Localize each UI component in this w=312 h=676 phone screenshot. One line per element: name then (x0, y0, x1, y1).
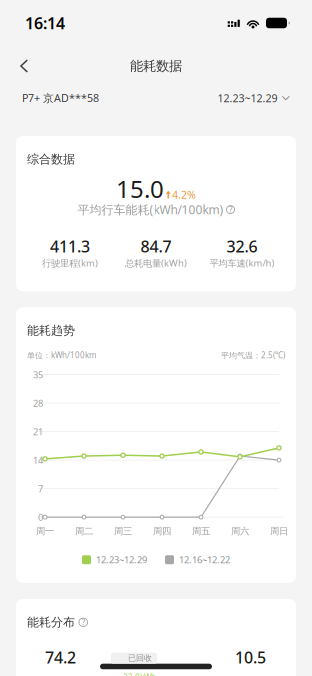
staticText: 411.3 (50, 235, 90, 257)
staticText: 32.6 (226, 235, 257, 257)
staticText: 28 (33, 397, 43, 409)
staticText: 能耗分布 (27, 615, 75, 630)
staticText: 周一 (36, 525, 54, 537)
staticText: 综合数据 (27, 152, 75, 167)
staticText: 0 (38, 511, 43, 523)
staticText: 12.16~12.22 (179, 554, 230, 566)
staticText: 周四 (153, 525, 171, 537)
staticText: 能耗趋势 (27, 323, 75, 338)
staticText: 12.23~12.29 (96, 554, 147, 566)
staticText: 周五 (192, 525, 210, 537)
staticText: 10.5 (235, 647, 266, 668)
staticText: 单位：kWh/100km (27, 350, 96, 360)
staticText: 平均气温：2.5(°C) (221, 350, 285, 360)
staticText: 15.0 (116, 173, 164, 205)
staticText: 周六 (231, 525, 249, 537)
staticText: ? (229, 204, 232, 215)
staticText: 已回收 (128, 653, 152, 663)
staticText: 84.7 (140, 235, 171, 257)
staticText: 14 (33, 454, 43, 466)
staticText: 总耗电量(kWh) (125, 257, 187, 269)
staticText: 16:14 (25, 12, 65, 34)
button[interactable]: 12.23~12.29 (218, 91, 290, 105)
staticText: 12.23~12.29 (218, 91, 278, 105)
staticText: 平均车速(km/h) (209, 257, 274, 269)
staticText: 能耗数据 (130, 58, 182, 74)
staticText: 4.2% (172, 187, 196, 202)
staticText: 74.2 (45, 647, 76, 668)
staticText: P7+ 京AD***58 (22, 91, 99, 105)
staticText: 平均行车能耗(kWh/100km) (77, 202, 223, 217)
staticText: 7 (38, 482, 43, 495)
staticText: 周日 (270, 525, 288, 537)
staticText: 行驶里程(km) (42, 257, 98, 269)
staticText: ? (82, 617, 85, 628)
button[interactable]: 返回 (8, 51, 40, 81)
staticText: 35 (33, 368, 43, 381)
staticText: 22.8kWh (123, 672, 156, 676)
staticText: 21 (33, 425, 43, 438)
staticText: 周三 (114, 525, 132, 537)
staticText: 周二 (75, 525, 93, 537)
